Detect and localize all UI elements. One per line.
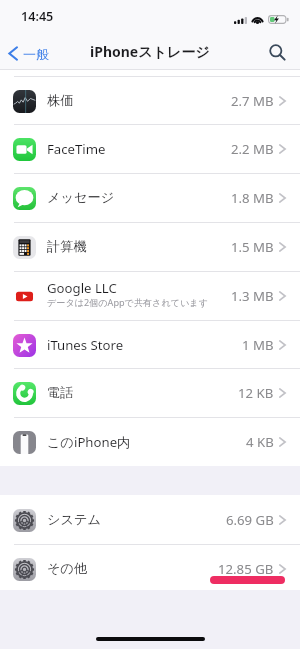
staticText: 一般 [23,46,49,62]
button[interactable]: このiPhone内 [0,417,300,466]
staticText: 1.3 MB [231,287,274,305]
staticText: データは2個のAppで共有されています [47,296,208,308]
staticText: 1.5 MB [231,238,274,256]
button[interactable]: システム [0,495,300,544]
button[interactable]: メッセージ [0,173,300,222]
staticText: 電話 [47,384,74,401]
staticText: 12.85 GB [218,560,274,578]
button[interactable]: 株価 [0,76,300,125]
staticText: 計算機 [47,238,87,255]
button[interactable]: その他 [0,544,300,593]
staticText: Google LLC [47,279,117,297]
button[interactable]: 電話 [0,368,300,417]
staticText: 4 KB [246,433,274,451]
button[interactable]: Search [265,40,290,65]
staticText: 1 MB [242,336,274,354]
staticText: 14:45 [21,8,54,25]
staticText: システム [47,511,101,528]
staticText: 6.69 GB [226,511,274,529]
staticText: このiPhone内 [47,433,131,451]
button[interactable]: iTunes Store [0,320,300,369]
staticText: 2.2 MB [231,140,274,158]
staticText: iTunes Store [47,336,124,354]
button[interactable]: FaceTime [0,124,300,173]
button[interactable]: 計算機 [0,222,300,271]
staticText: 12 KB [238,384,274,402]
staticText: 1.8 MB [231,189,274,207]
button[interactable]: Google LLC [0,271,300,320]
button[interactable]: 一般 [0,41,58,65]
staticText: 株価 [47,92,74,109]
staticText: メッセージ [47,189,115,206]
staticText: 2.7 MB [231,92,274,110]
staticText: その他 [47,560,88,577]
staticText: iPhoneストレージ [90,42,210,61]
staticText: FaceTime [47,140,106,158]
